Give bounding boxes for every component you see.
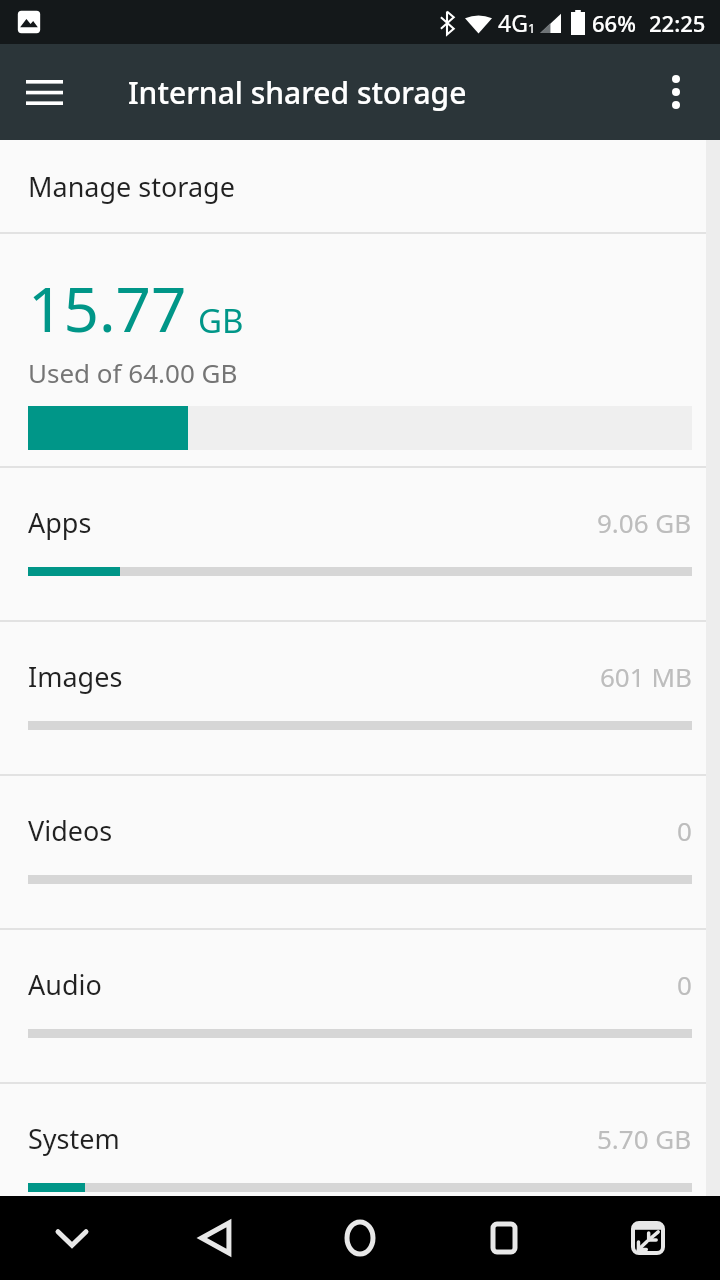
button[interactable]: Images xyxy=(0,622,720,774)
staticText: GB xyxy=(198,298,244,343)
staticText: Audio xyxy=(28,966,102,1003)
button[interactable]: Back xyxy=(144,1196,288,1280)
button[interactable]: Apps xyxy=(0,468,720,620)
staticText: 0 xyxy=(677,813,692,848)
button[interactable]: Hide keyboard xyxy=(0,1196,144,1280)
staticText: Used of 64.00 GB xyxy=(28,355,238,390)
staticText: Images xyxy=(28,658,123,695)
staticText: 1 xyxy=(528,19,536,37)
button[interactable]: System xyxy=(0,1084,720,1236)
button[interactable]: Videos xyxy=(0,776,720,928)
button[interactable]: Home xyxy=(288,1196,432,1280)
staticText: 66% xyxy=(592,8,636,38)
button[interactable]: Manage storage xyxy=(0,140,720,232)
staticText: 5.70 GB xyxy=(597,1121,692,1156)
staticText: 601 MB xyxy=(600,659,692,694)
button[interactable]: Shrink window xyxy=(576,1196,720,1280)
staticText: Videos xyxy=(28,812,113,849)
button[interactable]: Recent apps xyxy=(432,1196,576,1280)
button[interactable]: More options xyxy=(640,56,712,128)
staticText: 4G xyxy=(498,7,528,38)
staticText: 22:25 xyxy=(649,8,706,38)
button[interactable]: Audio xyxy=(0,930,720,1082)
staticText: 15.77 xyxy=(28,266,187,350)
staticText: Apps xyxy=(28,504,92,541)
staticText: 0 xyxy=(677,967,692,1002)
staticText: System xyxy=(28,1120,120,1157)
button[interactable]: Open navigation menu xyxy=(8,56,80,128)
staticText: Manage storage xyxy=(28,168,235,205)
staticText: Internal shared storage xyxy=(128,72,467,113)
staticText: 9.06 GB xyxy=(597,505,692,540)
